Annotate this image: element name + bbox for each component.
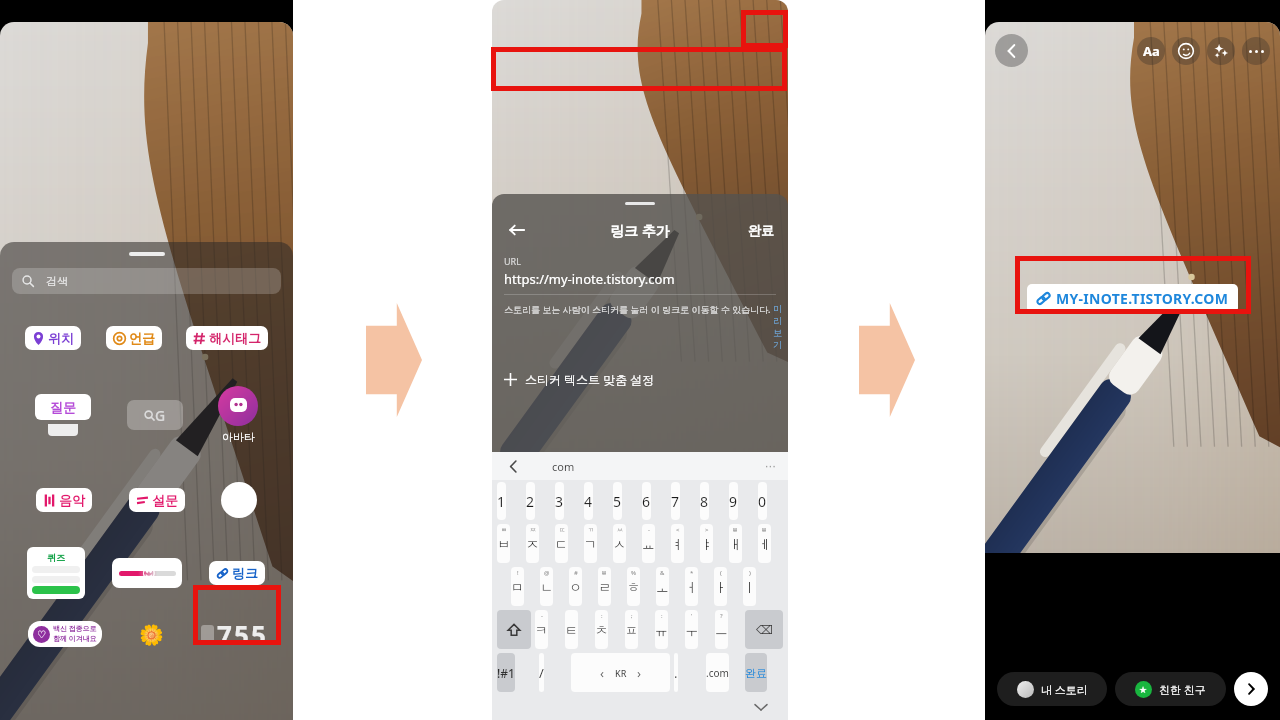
staticText: .com [706,666,729,680]
staticText: 9 [729,492,738,511]
button[interactable]: & [656,567,669,606]
button[interactable]: ‹ [571,653,670,692]
button[interactable]: ₩ [598,567,611,606]
button[interactable]: 0 [758,482,767,520]
button[interactable]: 9 [729,482,738,520]
staticText: ㅐ [729,536,742,552]
button[interactable]: ♡ [28,621,102,647]
button[interactable]: 😍 [112,558,182,588]
button[interactable]: 더 보기 [1242,37,1270,65]
staticText: 4 [584,492,593,511]
button[interactable]: 위치 [25,326,81,350]
button[interactable]: 스티커 텍스트 맞춤 설정 [492,371,788,387]
button[interactable]: 텍스트 [1137,37,1165,65]
button[interactable]: URL [492,251,788,294]
button[interactable]: G [127,400,183,430]
staticText: 음악 [59,492,85,508]
button[interactable]: 3 [555,482,564,520]
button[interactable]: 완료 [748,222,774,238]
button[interactable]: 8 [700,482,709,520]
staticText: ₩ [762,526,767,534]
button[interactable]: - [642,524,655,563]
button[interactable]: 꽃 스티커 [129,612,173,656]
button[interactable]: ㅉ [526,524,539,563]
button[interactable]: ? [715,610,728,649]
button[interactable]: 2 [526,482,535,520]
button[interactable]: @ [540,567,553,606]
button[interactable]: 퀴즈 [27,547,85,599]
button[interactable]: ; [625,610,638,649]
button[interactable]: 링크 [209,561,265,585]
button[interactable]: > [700,524,713,563]
button[interactable]: 뒤로 [995,34,1028,67]
button[interactable]: 반응 [221,482,257,518]
button[interactable]: : [655,610,668,649]
button[interactable]: ) [743,567,756,606]
button[interactable]: !#1 [497,653,515,692]
button[interactable]: 뒤로 [504,217,530,243]
button[interactable]: ( [714,567,727,606]
button[interactable]: com [552,459,575,474]
staticText: ? [720,612,723,620]
button[interactable]: 언급 [106,326,162,350]
button[interactable]: 공유 [1234,672,1268,706]
button[interactable]: ₩ [758,524,771,563]
staticText: / [539,664,544,682]
button[interactable]: 미리 보기 [773,303,776,351]
button[interactable]: - [535,610,548,649]
staticText: 언급 [129,330,155,346]
button[interactable]: 7 [671,482,680,520]
button[interactable]: < [671,524,684,563]
button[interactable]: MY-INOTE.TISTORY.COM [1027,284,1238,313]
staticText: 링크 [232,565,258,581]
button[interactable]: : [595,610,608,649]
staticText: ㅡ [715,622,728,638]
staticText: ₩ [733,526,738,534]
button[interactable]: 아바타 [218,386,258,444]
button[interactable]: 완료 [745,653,767,692]
button[interactable]: 4 [584,482,593,520]
button[interactable]: 질문 [35,394,91,420]
staticText: 😍 [142,566,156,581]
button[interactable]: 음악 [36,488,92,512]
button[interactable]: ★ [1115,672,1226,706]
button[interactable]: / [539,653,544,692]
button[interactable]: ₩ [729,524,742,563]
button[interactable]: 1 [497,482,506,520]
button[interactable]: . [674,653,678,692]
button[interactable]: 내 스토리 [997,672,1107,706]
button[interactable]: .com [706,653,729,692]
button[interactable]: % [627,567,640,606]
button[interactable]: 이전 [504,457,522,475]
button[interactable]: ㄸ [555,524,568,563]
staticText: 친한 친구 [1159,682,1206,697]
staticText: 스티커 텍스트 맞춤 설정 [525,371,655,387]
staticText: URL [504,255,521,267]
staticText: ㅌ [565,622,578,638]
staticText: ₩ [602,569,607,577]
button[interactable]: # [569,567,582,606]
button[interactable]: ' [685,610,698,649]
button[interactable]: 시계 [201,617,266,652]
button[interactable]: * [685,567,698,606]
button[interactable]: ㅌ [565,610,578,649]
staticText: 5 [613,492,622,511]
button[interactable]: 5 [613,482,622,520]
button[interactable]: ㅃ [497,524,510,563]
staticText: 0 [758,492,767,511]
button[interactable]: 스티커 [1172,37,1200,65]
button[interactable]: 효과 [1207,37,1235,65]
staticText: > [705,526,709,534]
button[interactable]: ! [511,567,524,606]
button[interactable]: 키보드 닫기 [752,698,770,716]
button[interactable]: ㄲ [584,524,597,563]
button[interactable]: 검색 [12,268,281,294]
button[interactable]: ⋯ [765,460,776,473]
button[interactable]: ㅆ [613,524,626,563]
button[interactable]: 삭제 [745,610,783,649]
button[interactable]: 6 [642,482,651,520]
button[interactable]: Shift [497,610,531,649]
button[interactable]: 해시태그 [186,326,268,350]
button[interactable]: 설문 [129,488,185,512]
staticText: < [676,526,680,534]
